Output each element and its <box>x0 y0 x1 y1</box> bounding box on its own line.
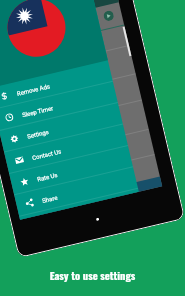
button[interactable]: Settings <box>0 103 123 152</box>
button[interactable]: Sleep Timer <box>0 82 118 131</box>
button[interactable]: Contact Us <box>4 124 128 174</box>
staticText: Contact Us <box>31 147 62 161</box>
staticText: Settings <box>26 128 49 140</box>
button[interactable]: Remove Ads <box>0 60 113 110</box>
staticText: Easy to use settings <box>0 267 185 283</box>
button[interactable]: Rate Us <box>9 146 133 195</box>
staticText: Sleep Timer <box>21 104 54 118</box>
button[interactable]: Share <box>14 167 138 217</box>
staticText: Share <box>41 193 59 204</box>
staticText: Remove Ads <box>16 82 51 97</box>
staticText: Rate Us <box>36 171 58 182</box>
